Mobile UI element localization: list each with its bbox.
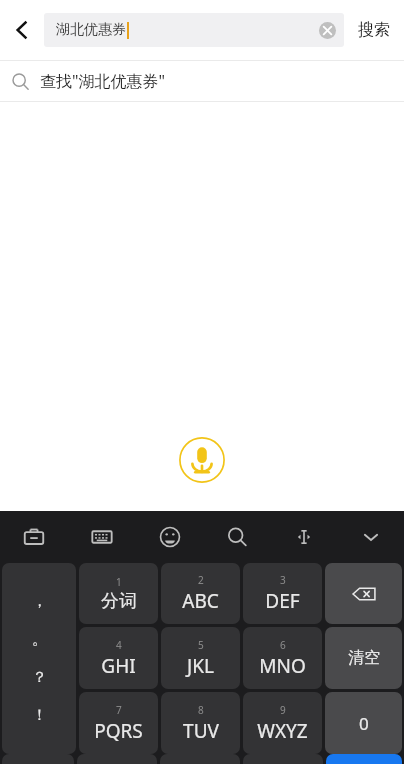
staticText: 6 (280, 638, 286, 652)
staticText: ！ (32, 706, 47, 725)
button[interactable] (243, 754, 323, 764)
staticText: 查找"湖北优惠券" (40, 70, 166, 92)
button[interactable]: 3 (243, 563, 322, 624)
staticText: 湖北优惠券 (56, 21, 126, 39)
button[interactable]: Emoji (136, 511, 203, 563)
staticText: PQRS (94, 718, 143, 744)
button[interactable]: Hide keyboard (337, 511, 404, 563)
staticText: 8 (198, 703, 204, 717)
button[interactable]: Back (0, 0, 44, 60)
button[interactable] (326, 754, 402, 764)
staticText: 4 (116, 638, 122, 652)
staticText: 2 (198, 573, 204, 587)
staticText: ABC (182, 588, 219, 614)
staticText: JKL (187, 653, 214, 679)
button[interactable]: 清空 (325, 627, 402, 689)
staticText: GHI (101, 653, 136, 679)
button[interactable]: Search (203, 511, 270, 563)
button[interactable]: 1 (79, 563, 158, 624)
button[interactable]: 4 (79, 627, 158, 689)
button[interactable]: 9 (243, 692, 322, 754)
button[interactable]: Keyboard layout (68, 511, 136, 563)
button[interactable]: Clear (310, 13, 344, 47)
staticText: 9 (280, 703, 286, 717)
button[interactable]: 查找"湖北优惠券" (0, 61, 404, 101)
button[interactable]: 6 (243, 627, 322, 689)
staticText: 7 (116, 703, 122, 717)
staticText: 清空 (348, 648, 380, 668)
button[interactable]: 5 (161, 627, 240, 689)
staticText: 搜索 (358, 20, 390, 40)
staticText: MNO (259, 653, 306, 679)
staticText: 0 (359, 712, 369, 735)
button[interactable]: 搜索 (344, 0, 404, 60)
button[interactable]: Voice input (178, 436, 226, 484)
staticText: 5 (198, 638, 204, 652)
staticText: TUV (183, 718, 219, 744)
staticText: 1 (116, 575, 122, 589)
staticText: ， (32, 592, 47, 611)
button[interactable] (2, 754, 74, 764)
staticText: DEF (265, 588, 300, 614)
button[interactable]: ， (2, 563, 76, 754)
button[interactable]: Move cursor (270, 511, 337, 563)
button[interactable]: Clipboard (0, 511, 68, 563)
staticText: WXYZ (257, 718, 308, 744)
staticText: 。 (32, 630, 47, 649)
button[interactable]: Backspace (325, 563, 402, 624)
button[interactable]: 7 (79, 692, 158, 754)
button[interactable]: 0 (325, 692, 402, 754)
staticText: ？ (32, 668, 47, 687)
button[interactable] (160, 754, 240, 764)
button[interactable] (77, 754, 157, 764)
staticText: 分词 (101, 590, 137, 613)
button[interactable]: 8 (161, 692, 240, 754)
staticText: 3 (280, 573, 286, 587)
button[interactable]: 湖北优惠券 (44, 13, 344, 47)
button[interactable]: 2 (161, 563, 240, 624)
